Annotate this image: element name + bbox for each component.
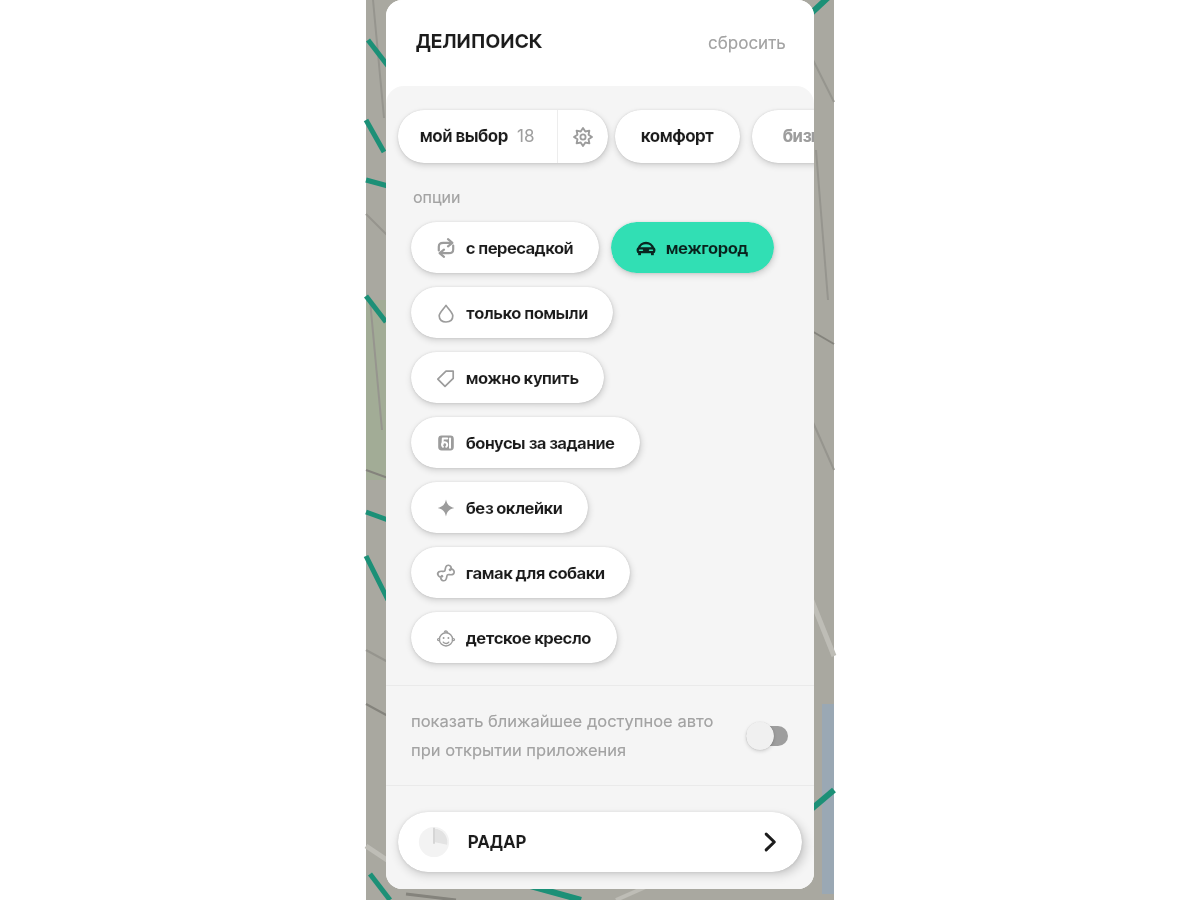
staticText: комфорт xyxy=(641,126,714,147)
staticText: можно купить xyxy=(466,368,579,388)
button[interactable]: можно купить xyxy=(411,352,604,403)
button[interactable]: только помыли xyxy=(411,287,613,338)
button[interactable]: бонусы за задание xyxy=(411,417,640,468)
button[interactable]: гамак для собаки xyxy=(411,547,630,598)
staticText: бизнес xyxy=(783,126,814,147)
staticText: 18 xyxy=(517,126,535,147)
staticText: показать ближайшее доступное авто при от… xyxy=(411,711,714,760)
staticText: с пересадкой xyxy=(466,238,574,258)
staticText: детское кресло xyxy=(466,628,592,648)
button[interactable]: Show nearest available car on app launch xyxy=(746,721,788,751)
staticText: только помыли xyxy=(466,303,588,323)
button[interactable]: с пересадкой xyxy=(411,222,599,273)
button[interactable]: детское кресло xyxy=(411,612,617,663)
button[interactable]: Settings xyxy=(558,110,608,163)
button[interactable]: сбросить xyxy=(704,27,790,60)
staticText: мой выбор xyxy=(420,126,509,147)
button[interactable]: без оклейки xyxy=(411,482,588,533)
button[interactable]: комфорт xyxy=(615,110,740,163)
staticText: сбросить xyxy=(708,33,786,54)
button[interactable]: мой выбор xyxy=(398,110,557,163)
staticText: межгород xyxy=(666,238,749,258)
staticText: ДЕЛИПОИСК xyxy=(416,29,543,53)
button[interactable]: межгород xyxy=(611,222,774,273)
staticText: опции xyxy=(413,187,461,206)
button[interactable]: РАДАР xyxy=(398,812,802,872)
staticText: гамак для собаки xyxy=(466,563,605,583)
staticText: без оклейки xyxy=(466,498,563,518)
staticText: бонусы за задание xyxy=(466,433,615,453)
staticText: РАДАР xyxy=(468,832,527,853)
button[interactable]: бизнес xyxy=(752,110,814,163)
